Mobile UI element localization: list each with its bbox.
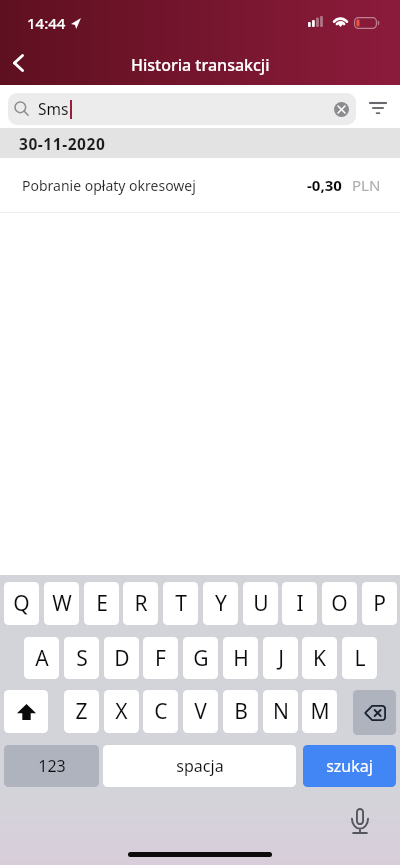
button[interactable]: Q <box>4 582 39 625</box>
button[interactable]: Shift <box>4 690 48 733</box>
button[interactable]: F <box>143 637 178 679</box>
staticText: U <box>253 589 269 618</box>
staticText: Historia transakcji <box>131 54 270 76</box>
button[interactable]: U <box>243 582 278 625</box>
button[interactable]: B <box>223 690 258 733</box>
button[interactable]: R <box>123 582 158 625</box>
staticText: R <box>134 589 148 618</box>
staticText: Y <box>215 589 227 618</box>
button[interactable]: Z <box>64 690 99 733</box>
button[interactable]: Filter <box>356 90 400 126</box>
staticText: J <box>278 644 284 673</box>
staticText: V <box>194 697 207 726</box>
staticText: S <box>76 644 88 673</box>
button[interactable]: K <box>302 637 337 679</box>
button[interactable]: M <box>302 690 337 733</box>
button[interactable]: Y <box>203 582 238 625</box>
button[interactable]: D <box>104 637 139 679</box>
staticText: 30-11-2020 <box>19 133 106 154</box>
button[interactable]: szukaj <box>303 745 396 787</box>
staticText: A <box>35 644 49 673</box>
staticText: Sms <box>38 98 69 119</box>
button[interactable]: G <box>183 637 218 679</box>
button[interactable]: O <box>322 582 357 625</box>
staticText: T <box>175 589 187 618</box>
button[interactable]: Clear text <box>334 102 349 117</box>
button[interactable]: C <box>143 690 178 733</box>
staticText: N <box>273 697 289 726</box>
staticText: F <box>155 644 166 673</box>
button[interactable]: I <box>282 582 317 625</box>
staticText: 123 <box>38 755 66 777</box>
staticText: M <box>310 697 330 726</box>
staticText: C <box>154 697 168 726</box>
staticText: I <box>296 589 304 618</box>
staticText: 14:44 <box>27 13 66 33</box>
button[interactable]: Voice input <box>346 807 374 835</box>
staticText: G <box>193 644 209 673</box>
staticText: H <box>233 644 249 673</box>
staticText: X <box>115 697 128 726</box>
staticText: spacja <box>176 755 224 777</box>
staticText: P <box>373 589 386 618</box>
button[interactable]: E <box>84 582 119 625</box>
staticText: szukaj <box>326 755 373 777</box>
button[interactable]: W <box>44 582 79 625</box>
button[interactable]: T <box>163 582 198 625</box>
staticText: W <box>52 589 72 618</box>
button[interactable]: Backspace <box>353 690 396 735</box>
staticText: Pobranie opłaty okresowej <box>22 176 196 195</box>
staticText: L <box>354 644 366 673</box>
staticText: -0,30 <box>307 175 342 195</box>
staticText: PLN <box>352 175 381 195</box>
staticText: D <box>114 644 130 673</box>
button[interactable]: X <box>104 690 139 733</box>
button[interactable]: Sms <box>8 93 356 125</box>
button[interactable]: L <box>342 637 377 679</box>
staticText: Q <box>13 589 30 618</box>
staticText: B <box>234 697 248 726</box>
staticText: K <box>313 644 326 673</box>
button[interactable]: N <box>263 690 298 733</box>
staticText: E <box>96 589 108 618</box>
staticText: O <box>331 589 348 618</box>
button[interactable]: spacja <box>103 745 296 787</box>
button[interactable]: S <box>64 637 99 679</box>
button[interactable]: H <box>223 637 258 679</box>
button[interactable]: P <box>362 582 397 625</box>
button[interactable]: Pobranie opłaty okresowej <box>0 158 400 212</box>
staticText: Z <box>75 697 88 726</box>
button[interactable]: 123 <box>4 745 99 787</box>
button[interactable]: A <box>24 637 59 679</box>
button[interactable]: Back <box>0 43 36 83</box>
button[interactable]: J <box>263 637 298 679</box>
button[interactable]: V <box>183 690 218 733</box>
